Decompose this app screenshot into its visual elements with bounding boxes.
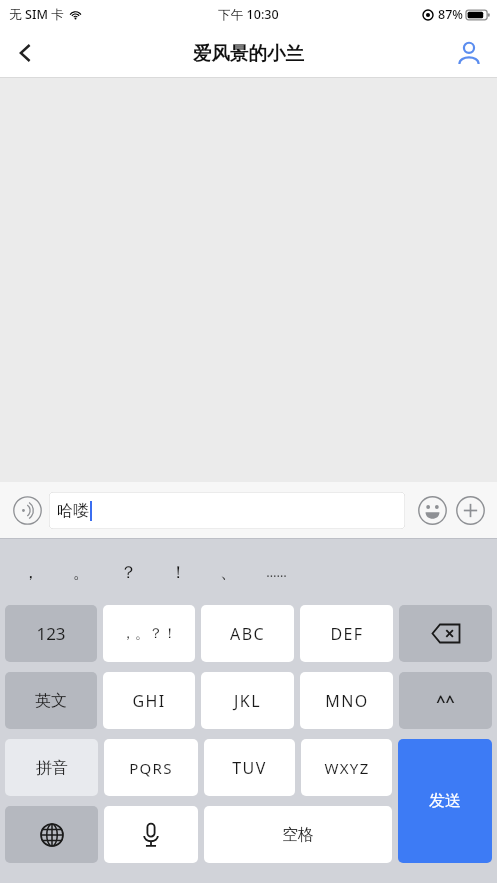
- staticText: ？: [120, 562, 137, 583]
- staticText: ，: [22, 562, 39, 583]
- button[interactable]: TUV: [204, 739, 295, 796]
- button[interactable]: Delete: [399, 605, 492, 662]
- staticText: JKL: [234, 690, 261, 712]
- button[interactable]: Switch keyboard: [5, 806, 98, 863]
- button[interactable]: 哈喽: [49, 492, 405, 529]
- button[interactable]: WXYZ: [301, 739, 392, 796]
- button[interactable]: Contact profile: [441, 28, 497, 78]
- staticText: 下午 10:30: [218, 6, 279, 23]
- staticText: 。: [73, 562, 90, 583]
- button[interactable]: 。: [61, 552, 101, 592]
- button[interactable]: GHI: [103, 672, 195, 729]
- staticText: 87%: [438, 6, 463, 23]
- staticText: TUV: [232, 757, 267, 779]
- staticText: WXYZ: [324, 758, 370, 778]
- staticText: 发送: [429, 791, 461, 811]
- button[interactable]: JKL: [201, 672, 294, 729]
- staticText: MNO: [325, 690, 369, 712]
- staticText: ，。？！: [121, 625, 177, 643]
- button[interactable]: ^^: [399, 672, 492, 729]
- staticText: ……: [266, 563, 287, 581]
- staticText: 拼音: [36, 758, 68, 778]
- staticText: ！: [170, 562, 187, 583]
- button[interactable]: 发送: [398, 739, 492, 863]
- button[interactable]: ABC: [201, 605, 294, 662]
- staticText: 、: [220, 562, 237, 583]
- button[interactable]: 拼音: [5, 739, 98, 796]
- button[interactable]: ……: [256, 552, 296, 592]
- button[interactable]: 、: [208, 552, 248, 592]
- staticText: 哈喽: [57, 501, 89, 521]
- button[interactable]: MNO: [300, 672, 393, 729]
- button[interactable]: Back: [0, 28, 52, 78]
- staticText: 123: [36, 622, 66, 645]
- staticText: GHI: [132, 690, 166, 712]
- button[interactable]: More options: [451, 491, 489, 529]
- staticText: ^^: [436, 690, 455, 712]
- button[interactable]: 123: [5, 605, 97, 662]
- staticText: 爱风景的小兰: [193, 42, 304, 65]
- staticText: 英文: [35, 691, 67, 711]
- button[interactable]: ？: [108, 552, 148, 592]
- button[interactable]: 英文: [5, 672, 97, 729]
- button[interactable]: Voice input: [104, 806, 198, 863]
- button[interactable]: ，。？！: [103, 605, 195, 662]
- staticText: 空格: [282, 825, 314, 845]
- staticText: PQRS: [129, 758, 173, 778]
- button[interactable]: DEF: [300, 605, 393, 662]
- staticText: DEF: [330, 623, 364, 645]
- button[interactable]: Emoji: [413, 491, 451, 529]
- button[interactable]: 空格: [204, 806, 392, 863]
- staticText: 无 SIM 卡: [9, 6, 64, 23]
- staticText: ABC: [230, 623, 265, 645]
- button[interactable]: PQRS: [104, 739, 198, 796]
- button[interactable]: ！: [158, 552, 198, 592]
- button[interactable]: Voice message: [8, 491, 46, 529]
- button[interactable]: ，: [10, 552, 50, 592]
